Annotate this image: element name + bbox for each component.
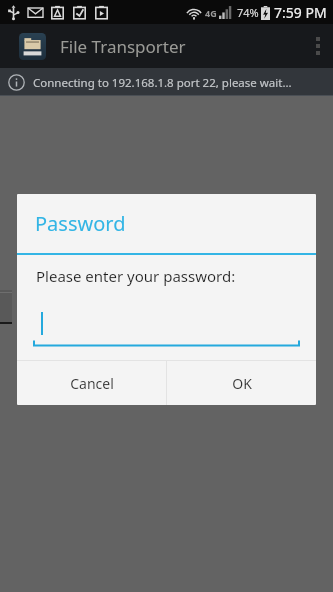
button[interactable]: OK bbox=[167, 361, 316, 405]
button[interactable]: Cancel bbox=[17, 361, 166, 405]
staticText: Password bbox=[35, 210, 126, 237]
staticText: 7:59 PM bbox=[274, 3, 327, 22]
staticText: OK bbox=[232, 374, 252, 393]
staticText: 4G bbox=[205, 7, 217, 19]
staticText: Please enter your password: bbox=[36, 266, 236, 286]
button[interactable]: Connecting to 192.168.1.8 port 22, pleas… bbox=[0, 68, 333, 96]
staticText: 74% bbox=[237, 5, 259, 20]
staticText: Connecting to 192.168.1.8 port 22, pleas… bbox=[33, 75, 292, 91]
button[interactable]: More options bbox=[303, 24, 333, 68]
button[interactable] bbox=[25, 307, 308, 348]
staticText: File Transporter bbox=[60, 35, 186, 58]
staticText: Cancel bbox=[70, 374, 114, 393]
